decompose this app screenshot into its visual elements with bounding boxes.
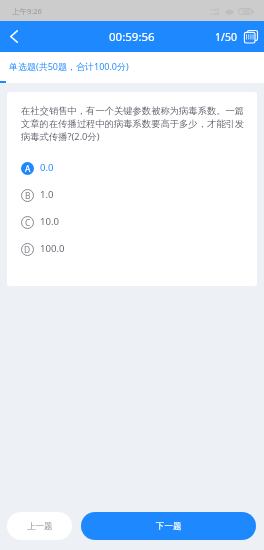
staticText: 上一题 xyxy=(27,521,53,532)
staticText: C xyxy=(25,217,31,228)
staticText: 上午9:26 xyxy=(12,6,42,16)
button[interactable]: A xyxy=(21,155,246,182)
staticText: 1.0 xyxy=(40,188,54,201)
button[interactable]: 下一题 xyxy=(81,512,256,540)
staticText: 100.0 xyxy=(40,242,65,255)
staticText: 下一题 xyxy=(156,521,182,532)
button[interactable]: Question list xyxy=(244,30,258,44)
button[interactable]: D xyxy=(21,236,246,263)
staticText: 单选题(共50题，合计100.0分) xyxy=(9,60,129,72)
staticText: 1/50 xyxy=(215,30,237,44)
staticText: 在社交销售中，有一个关键参数被称为病毒系数。一篇文章的在传播过程中的病毒系数要高… xyxy=(21,104,246,144)
staticText: A xyxy=(25,163,31,174)
button[interactable]: 上一题 xyxy=(7,512,72,540)
button[interactable]: C xyxy=(21,209,246,236)
staticText: D xyxy=(24,244,31,255)
staticText: 0.0 xyxy=(40,161,54,174)
staticText: 10.0 xyxy=(40,215,60,228)
button[interactable]: Back xyxy=(0,21,28,52)
staticText: 00:59:56 xyxy=(109,29,155,45)
button[interactable]: B xyxy=(21,182,246,209)
staticText: B xyxy=(25,190,31,201)
